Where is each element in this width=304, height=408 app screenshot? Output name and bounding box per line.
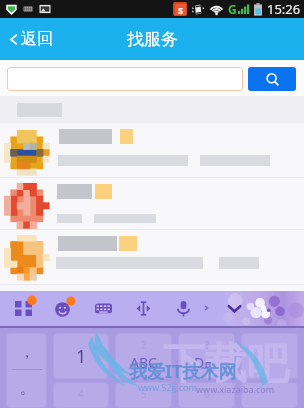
button[interactable]: Key (241, 382, 298, 408)
button[interactable]: Move cursor (135, 300, 152, 317)
button[interactable] (0, 178, 304, 230)
staticText: 5 (141, 387, 147, 401)
staticText: 。 (20, 380, 34, 398)
staticText: 15:26 (267, 0, 301, 18)
staticText: 下载吧 (163, 338, 289, 391)
button[interactable]: Key (241, 333, 298, 379)
staticText: ， (20, 344, 34, 362)
button[interactable]: 4 (53, 382, 109, 408)
button[interactable] (0, 230, 304, 285)
button[interactable]: Punctuation (6, 333, 47, 408)
button[interactable]: 1 (53, 333, 109, 379)
staticText: 我爱IT技术网 (129, 359, 237, 384)
button[interactable]: More (202, 304, 210, 312)
button[interactable]: Apps (15, 300, 32, 317)
staticText: www.52ij.com (138, 381, 197, 393)
button[interactable]: Keyboard layout (95, 300, 112, 317)
staticText: 返回 (21, 29, 53, 49)
staticText: 1 (76, 344, 87, 369)
button[interactable]: 6 (178, 382, 235, 408)
button[interactable] (0, 123, 304, 178)
button[interactable]: 3 (178, 333, 235, 379)
button[interactable]: Voice input (175, 300, 192, 317)
staticText: www.xiazaiba.com (196, 383, 275, 395)
staticText: 找服务 (127, 29, 178, 50)
staticText: 6 (204, 387, 210, 401)
button[interactable]: 返回 (0, 18, 63, 60)
staticText: G (228, 1, 237, 17)
button[interactable]: 5 (115, 382, 172, 408)
staticText: 3 (204, 338, 210, 352)
staticText: 4 (78, 387, 84, 401)
button[interactable]: Search field (7, 67, 243, 91)
staticText: S (178, 4, 183, 15)
staticText: ABC (130, 353, 157, 372)
staticText: 2 (141, 338, 147, 352)
button[interactable]: Hide keyboard (226, 300, 243, 317)
button[interactable]: Emoji (55, 300, 72, 317)
button[interactable]: 2 (115, 333, 172, 379)
staticText: DEF (194, 353, 220, 372)
button[interactable]: Search (248, 67, 296, 91)
